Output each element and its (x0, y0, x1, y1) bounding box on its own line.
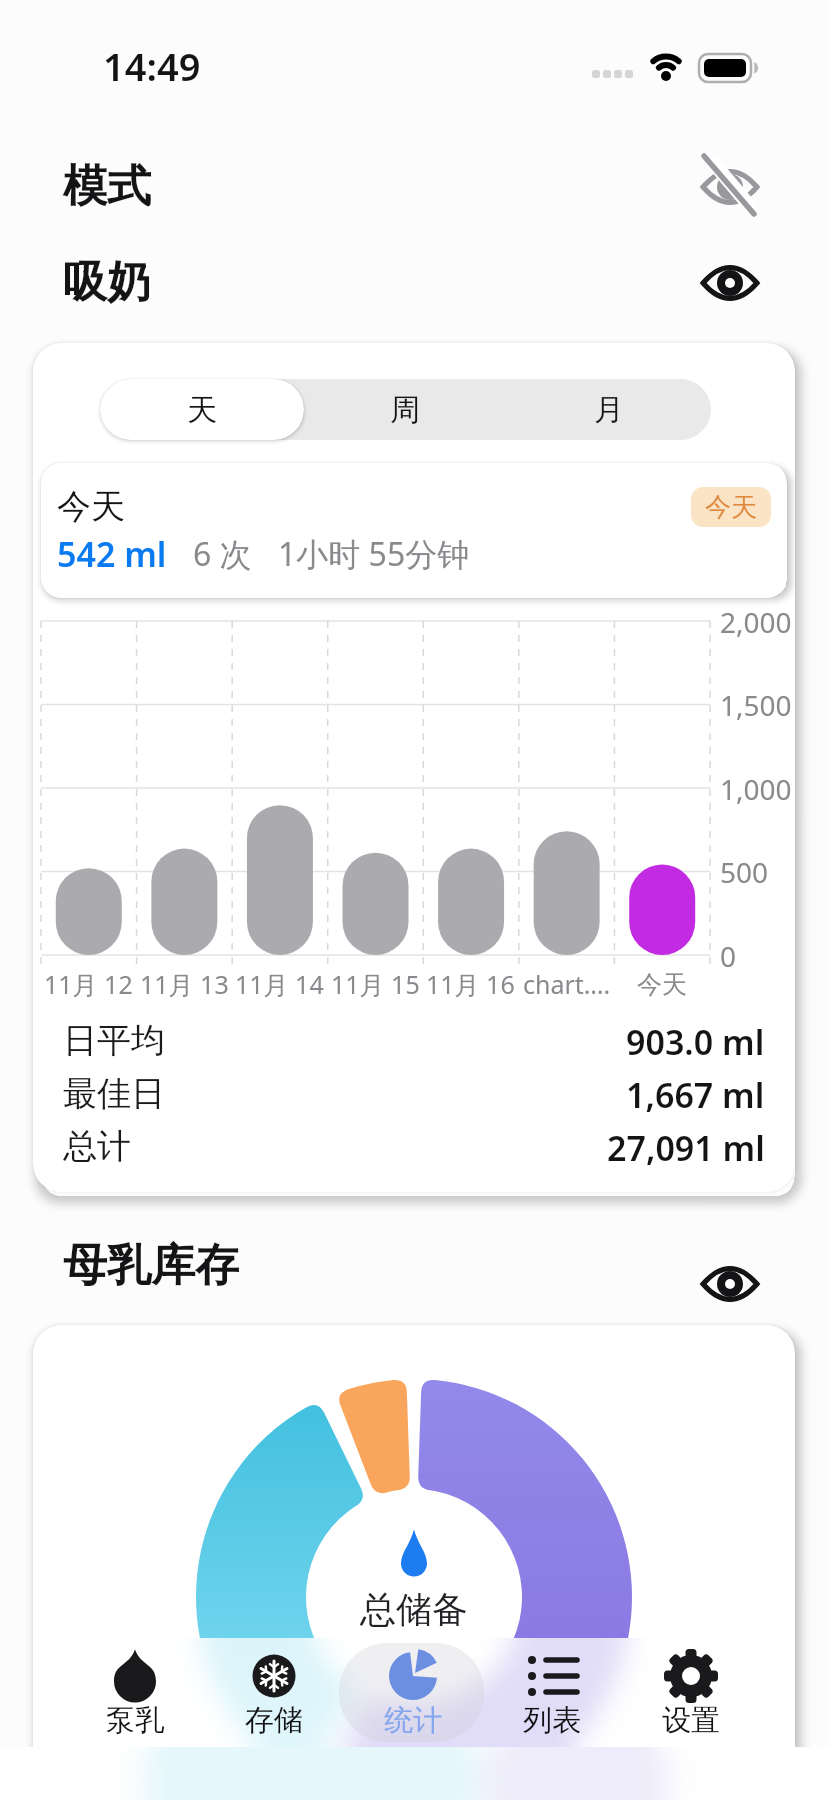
staticText: 27,091 ml (607, 1125, 765, 1171)
button[interactable] (694, 247, 766, 319)
staticText: 存储 (245, 1702, 303, 1739)
staticText: 周 (390, 391, 420, 429)
staticText: 泵乳 (106, 1702, 164, 1739)
button[interactable]: 设置 (621, 1638, 760, 1747)
button[interactable]: 月 (507, 379, 711, 440)
button[interactable]: 泵乳 (65, 1638, 204, 1747)
staticText: 11月 14 (235, 967, 324, 1001)
staticText: 月 (594, 391, 624, 429)
staticText: 1,500 (720, 686, 792, 724)
staticText: 2,000 (720, 603, 792, 641)
staticText: 11月 15 (331, 967, 420, 1001)
staticText: 500 (720, 853, 769, 891)
staticText: chart…. (523, 967, 611, 1001)
staticText: 母乳库存 (63, 1238, 239, 1293)
staticText: 6 次 (193, 532, 252, 576)
staticText: 0 (720, 937, 737, 975)
button[interactable]: 今天 (41, 463, 787, 598)
button[interactable]: 周 (303, 379, 507, 440)
staticText: 天 (187, 391, 217, 429)
staticText: 模式 (63, 159, 151, 214)
button[interactable]: 统计 (343, 1638, 482, 1747)
staticText: 1,667 ml (626, 1072, 765, 1118)
staticText: 14:49 (103, 40, 201, 92)
staticText: 总储备 (360, 1587, 468, 1632)
staticText: 日平均 (63, 1019, 165, 1062)
staticText: 1小时 55分钟 (278, 532, 470, 576)
staticText: 列表 (523, 1702, 581, 1739)
staticText: 今天 (57, 485, 125, 528)
staticText: 最佳日 (63, 1072, 165, 1115)
staticText: 今天 (637, 969, 687, 1000)
staticText: 统计 (384, 1702, 442, 1739)
button[interactable] (694, 1248, 766, 1320)
staticText: 11月 13 (140, 967, 229, 1001)
staticText: 设置 (662, 1702, 720, 1739)
button[interactable]: 存储 (204, 1638, 343, 1747)
staticText: 903.0 ml (626, 1019, 765, 1065)
staticText: 今天 (705, 491, 757, 524)
staticText: 1,000 (720, 770, 792, 808)
staticText: 总计 (63, 1125, 131, 1168)
button[interactable] (694, 151, 766, 223)
staticText: 11月 16 (426, 967, 515, 1001)
button[interactable]: 列表 (482, 1638, 621, 1747)
button[interactable]: 天 (100, 379, 303, 440)
staticText: 11月 12 (44, 967, 133, 1001)
staticText: 542 ml (57, 531, 167, 577)
staticText: 吸奶 (63, 255, 151, 310)
